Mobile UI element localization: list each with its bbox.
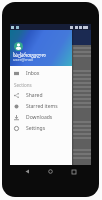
- button[interactable]: Downloads: [10, 112, 72, 123]
- staticText: Settings: [26, 125, 46, 132]
- staticText: საქართველო: [13, 52, 46, 58]
- staticText: Downloads: [26, 114, 53, 121]
- button[interactable]: Shared: [10, 90, 72, 101]
- button[interactable]: Back: [21, 165, 34, 178]
- button[interactable]: Recent apps: [67, 165, 80, 178]
- button[interactable]: Inbox: [10, 68, 72, 79]
- staticText: Sections: [14, 82, 32, 88]
- staticText: Inbox: [26, 70, 40, 77]
- staticText: user@mail: [13, 57, 33, 62]
- button[interactable]: Starred items: [10, 101, 72, 112]
- button[interactable]: Settings: [10, 123, 72, 134]
- staticText: Shared: [26, 92, 43, 99]
- staticText: Starred items: [26, 103, 58, 110]
- button[interactable]: Home: [44, 165, 57, 178]
